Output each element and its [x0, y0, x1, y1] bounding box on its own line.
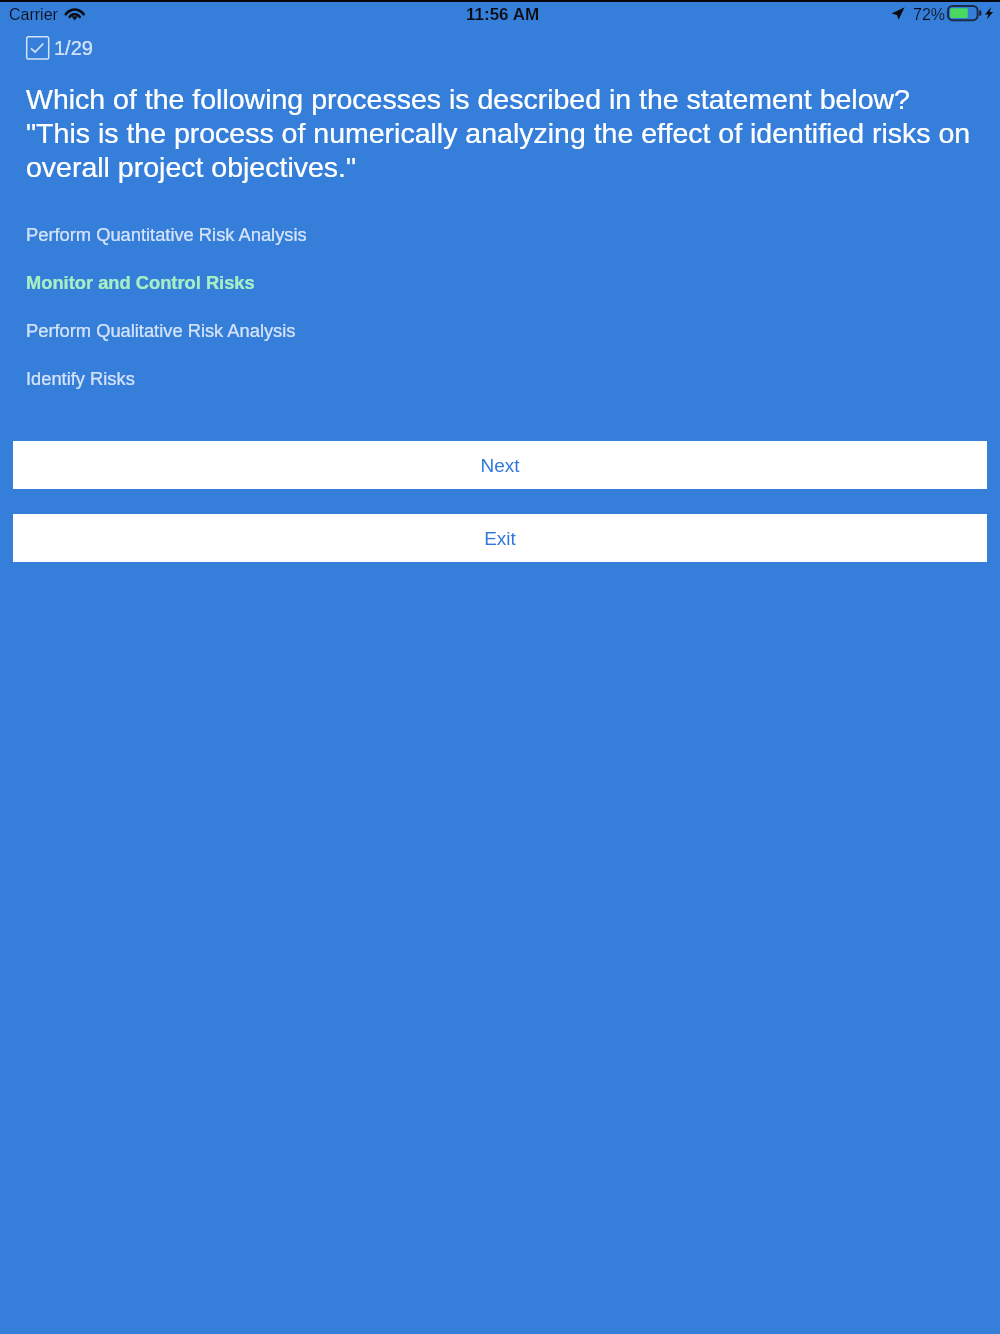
staticText: Monitor and Control Risks [26, 272, 255, 292]
other: Battery 72 percent charging [947, 5, 983, 23]
staticText: Perform Qualitative Risk Analysis [26, 320, 296, 340]
button[interactable]: Exit [13, 514, 987, 562]
staticText: 72% [913, 6, 946, 24]
staticText: 1/29 [54, 37, 93, 59]
button[interactable]: Question 1 of 29 [22, 34, 99, 62]
staticText: Perform Quantitative Risk Analysis [26, 224, 307, 244]
button[interactable]: Next [13, 441, 987, 489]
staticText: Carrier [9, 6, 58, 24]
staticText: Exit [484, 528, 516, 549]
staticText: Which of the following processes is desc… [26, 83, 1000, 184]
staticText: Identify Risks [26, 368, 135, 388]
staticText: Next [480, 455, 520, 476]
button[interactable]: Monitor and Control Risks [0, 258, 1000, 306]
other: Wi-Fi [65, 4, 86, 22]
other: Location [891, 6, 906, 22]
staticText: 11:56 AM [466, 5, 540, 24]
button[interactable]: Perform Quantitative Risk Analysis [0, 210, 1000, 258]
button[interactable]: Identify Risks [0, 354, 1000, 402]
button[interactable]: Perform Qualitative Risk Analysis [0, 306, 1000, 354]
